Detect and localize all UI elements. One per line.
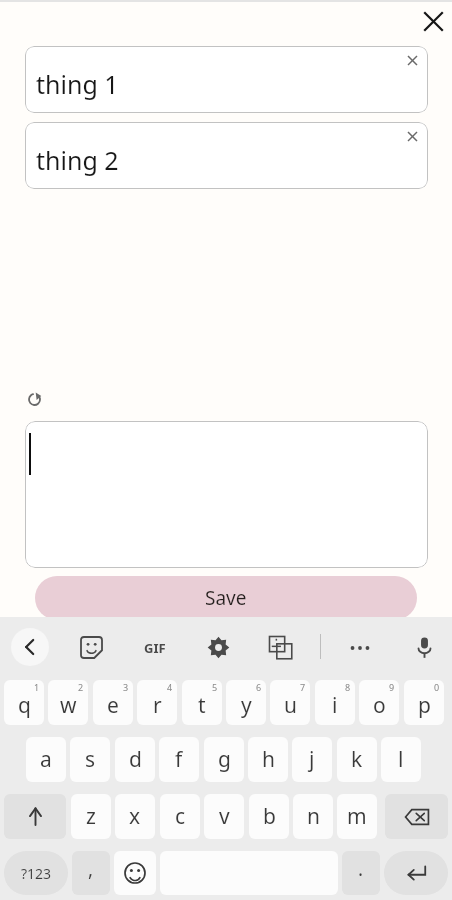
button[interactable]: Key a: [26, 737, 66, 782]
staticText: 2: [78, 681, 84, 693]
button[interactable]: Key m: [337, 794, 377, 839]
button[interactable]: Key w: [48, 680, 88, 725]
button[interactable]: Period: [342, 851, 380, 895]
button[interactable]: Key i: [315, 680, 355, 725]
button[interactable]: Settings: [200, 629, 236, 665]
button[interactable]: Backspace: [385, 794, 448, 839]
staticText: GIF: [144, 639, 166, 657]
button[interactable]: Key y: [226, 680, 266, 725]
staticText: k: [351, 745, 363, 774]
button[interactable]: Key t: [182, 680, 222, 725]
button[interactable]: Translate: [262, 629, 298, 665]
button[interactable]: Key r: [137, 680, 177, 725]
staticText: l: [398, 745, 404, 774]
staticText: q: [18, 691, 31, 720]
button[interactable]: Key b: [249, 794, 289, 839]
staticText: m: [347, 802, 367, 831]
staticText: n: [307, 802, 320, 831]
staticText: p: [418, 691, 431, 720]
button[interactable]: GIF: [138, 631, 172, 665]
staticText: 6: [256, 681, 262, 693]
button[interactable]: Refresh: [21, 386, 47, 412]
staticText: r: [153, 691, 162, 720]
staticText: f: [175, 745, 183, 774]
button[interactable]: Symbols: [4, 851, 68, 895]
button[interactable]: Key p: [404, 680, 444, 725]
button[interactable]: Remove thing 2: [402, 126, 422, 146]
staticText: g: [218, 745, 231, 774]
button[interactable]: Voice input: [406, 629, 442, 665]
button[interactable]: Emoji: [114, 851, 156, 895]
staticText: i: [332, 691, 338, 720]
staticText: thing 2: [36, 143, 119, 177]
staticText: v: [219, 802, 230, 831]
button[interactable]: Key s: [70, 737, 110, 782]
staticText: d: [129, 745, 142, 774]
staticText: Save: [205, 585, 247, 611]
staticText: t: [198, 691, 206, 720]
button[interactable]: Key k: [337, 737, 377, 782]
staticText: thing 1: [36, 67, 119, 101]
button[interactable]: Save: [35, 576, 417, 620]
staticText: ,: [88, 856, 94, 882]
button[interactable]: Shift: [4, 794, 66, 839]
button[interactable]: Enter: [384, 851, 448, 895]
staticText: 5: [212, 681, 218, 693]
staticText: y: [241, 691, 252, 720]
button[interactable]: Key q: [4, 680, 44, 725]
staticText: h: [262, 745, 275, 774]
button[interactable]: Key g: [204, 737, 244, 782]
button[interactable]: Key n: [293, 794, 333, 839]
button[interactable]: Key l: [381, 737, 421, 782]
staticText: c: [175, 802, 186, 831]
button[interactable]: [25, 421, 428, 568]
staticText: 3: [123, 681, 129, 693]
staticText: e: [107, 691, 119, 720]
staticText: j: [309, 745, 315, 774]
staticText: 9: [389, 681, 395, 693]
button[interactable]: Key u: [270, 680, 310, 725]
button[interactable]: Key o: [359, 680, 399, 725]
button[interactable]: Close: [419, 7, 447, 35]
staticText: x: [129, 802, 141, 831]
staticText: a: [40, 745, 52, 774]
staticText: 4: [167, 681, 173, 693]
button[interactable]: More options: [343, 631, 377, 665]
staticText: 7: [300, 681, 306, 693]
button[interactable]: Key c: [160, 794, 200, 839]
button[interactable]: Key x: [115, 794, 155, 839]
staticText: z: [86, 802, 96, 831]
button[interactable]: Remove thing 1: [402, 50, 422, 70]
staticText: u: [284, 691, 297, 720]
button[interactable]: thing 2: [25, 122, 428, 189]
button[interactable]: Key f: [159, 737, 199, 782]
staticText: b: [263, 802, 276, 831]
staticText: ?123: [21, 864, 52, 883]
staticText: 0: [434, 681, 440, 693]
button[interactable]: Comma: [72, 851, 110, 895]
button[interactable]: Key j: [292, 737, 332, 782]
button[interactable]: Stickers: [73, 629, 109, 665]
staticText: 1: [34, 681, 40, 693]
staticText: s: [85, 745, 96, 774]
staticText: w: [60, 691, 77, 720]
staticText: o: [373, 691, 386, 720]
button[interactable]: Key h: [248, 737, 288, 782]
button[interactable]: Key v: [204, 794, 244, 839]
button[interactable]: Key z: [71, 794, 111, 839]
button[interactable]: thing 1: [25, 46, 428, 113]
button[interactable]: Back: [11, 628, 49, 666]
staticText: .: [358, 856, 364, 882]
button[interactable]: Key d: [115, 737, 155, 782]
staticText: 8: [345, 681, 351, 693]
button[interactable]: Key e: [93, 680, 133, 725]
